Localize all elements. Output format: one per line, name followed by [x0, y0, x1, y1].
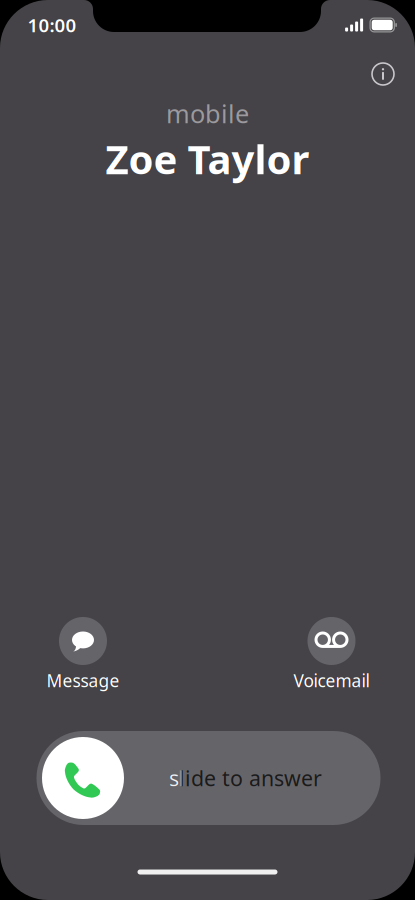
- staticText: Voicemail: [293, 669, 369, 692]
- staticText: 10:00: [27, 13, 76, 37]
- staticText: Zoe Taylor: [105, 132, 309, 185]
- staticText: Message: [46, 669, 119, 692]
- button[interactable]: Message: [46, 617, 119, 692]
- staticText: slide to answer: [169, 764, 322, 792]
- button[interactable]: Call details: [368, 59, 398, 89]
- staticText: l: [178, 764, 184, 792]
- button[interactable]: Slide to answer: [36, 731, 380, 825]
- staticText: mobile: [166, 97, 249, 130]
- button[interactable]: Voicemail: [293, 617, 369, 692]
- staticText: s: [169, 764, 179, 792]
